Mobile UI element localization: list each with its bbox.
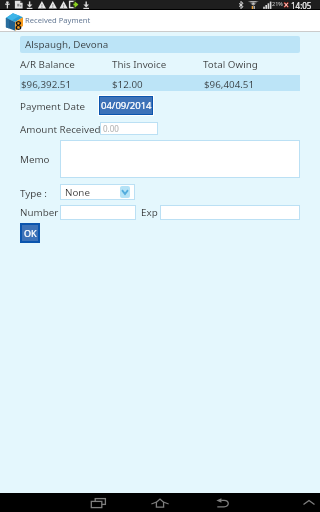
staticText: None bbox=[65, 186, 90, 199]
button[interactable]: Recent apps bbox=[86, 494, 110, 511]
staticText: Alspaugh, Devona bbox=[25, 38, 109, 51]
button[interactable] bbox=[60, 140, 300, 178]
button[interactable]: Back bbox=[210, 494, 234, 511]
button[interactable]: Home bbox=[148, 494, 172, 511]
button[interactable]: Show navigation bar bbox=[299, 496, 319, 509]
button[interactable]: 04/09/2014 bbox=[100, 97, 152, 114]
staticText: 8 bbox=[15, 17, 22, 33]
button[interactable] bbox=[60, 205, 136, 220]
staticText: Payment Date bbox=[20, 100, 85, 113]
button[interactable]: OK bbox=[22, 225, 38, 241]
staticText: $12.00 bbox=[112, 78, 143, 91]
staticText: OK bbox=[24, 227, 37, 239]
staticText: Exp bbox=[141, 206, 158, 219]
staticText: A/R Balance bbox=[20, 58, 75, 71]
staticText: 04/09/2014 bbox=[101, 99, 152, 112]
staticText: $96,392.51 bbox=[21, 78, 72, 91]
staticText: 14:05 bbox=[291, 0, 312, 10]
staticText: Number bbox=[20, 206, 59, 219]
staticText: Received Payment bbox=[25, 15, 91, 25]
button[interactable]: Alspaugh, Devona bbox=[20, 36, 300, 53]
staticText: Type : bbox=[20, 187, 47, 200]
button[interactable] bbox=[160, 205, 300, 220]
button[interactable]: 0.00 bbox=[100, 122, 158, 135]
staticText: Amount Received bbox=[20, 123, 101, 136]
staticText: Total Owing bbox=[203, 58, 258, 71]
staticText: 21% bbox=[272, 0, 283, 7]
staticText: This Invoice bbox=[112, 58, 167, 71]
staticText: $96,404.51 bbox=[204, 78, 255, 91]
button[interactable]: None bbox=[60, 184, 135, 200]
staticText: Memo bbox=[20, 153, 50, 166]
staticText: 0.00 bbox=[103, 123, 119, 134]
